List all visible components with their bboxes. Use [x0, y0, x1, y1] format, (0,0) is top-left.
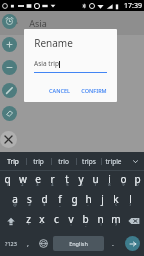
button[interactable]: Change language	[35, 231, 51, 256]
button[interactable]: .	[106, 231, 120, 256]
button[interactable]: 8	[102, 171, 116, 191]
staticText: 17:39	[124, 1, 142, 11]
button[interactable]: Asia trip	[34, 59, 107, 73]
staticText: English	[69, 240, 88, 247]
button[interactable]: 1	[0, 171, 15, 191]
button[interactable]: Back	[5, 15, 21, 31]
staticText: Rename	[34, 36, 73, 50]
staticText: q	[4, 172, 11, 186]
staticText: 6	[80, 182, 83, 187]
staticText: trio	[58, 157, 69, 166]
button[interactable]: #	[22, 191, 37, 211]
button[interactable]: 3	[30, 171, 45, 191]
button[interactable]: CONFIRM	[78, 85, 110, 96]
button[interactable]: trio	[51, 152, 76, 170]
staticText: :	[70, 222, 72, 227]
button[interactable]: CANCEL	[46, 85, 73, 96]
button[interactable]: Shift	[0, 211, 21, 231]
staticText: ,	[27, 239, 29, 249]
button[interactable]: 7	[88, 171, 102, 191]
staticText: 3	[36, 182, 39, 187]
button[interactable]: Draw	[2, 83, 17, 98]
staticText: z	[26, 212, 31, 226]
staticText: 2	[21, 182, 24, 187]
button[interactable]: Close	[0, 131, 17, 148]
staticText: j	[101, 192, 104, 206]
staticText: o	[120, 172, 127, 186]
button[interactable]: &	[67, 191, 81, 211]
button[interactable]: ?123	[0, 231, 21, 256]
button[interactable]: ?	[108, 211, 123, 231]
staticText: g	[71, 192, 78, 206]
button[interactable]: 0	[130, 171, 144, 191]
staticText: d	[41, 192, 48, 206]
staticText: CONFIRM	[81, 87, 107, 94]
button[interactable]: 6	[74, 171, 88, 191]
staticText: !	[100, 222, 102, 227]
staticText: '	[56, 222, 57, 227]
staticText: $	[43, 202, 46, 207]
staticText: "	[41, 222, 43, 227]
button[interactable]: Emoji	[21, 231, 35, 256]
button[interactable]: English	[53, 236, 104, 251]
staticText: &	[73, 202, 76, 207]
button[interactable]: 9	[116, 171, 130, 191]
button[interactable]: 4	[45, 171, 60, 191]
staticText: v	[68, 212, 74, 226]
button[interactable]: trips	[76, 152, 101, 170]
staticText: a	[12, 192, 18, 206]
staticText: trips	[82, 157, 96, 166]
staticText: 8	[108, 182, 111, 187]
staticText: ?123	[5, 240, 17, 247]
staticText: #	[28, 202, 31, 207]
button[interactable]: -	[81, 191, 95, 211]
staticText: s	[27, 192, 32, 206]
button[interactable]: ;	[78, 211, 93, 231]
button[interactable]: Enter	[125, 236, 140, 251]
button[interactable]: Erase	[2, 106, 17, 121]
staticText: e	[35, 172, 41, 186]
staticText: 7	[94, 182, 97, 187]
staticText: p	[134, 172, 141, 186]
staticText: i	[108, 172, 111, 186]
staticText: .	[112, 239, 114, 249]
staticText: )	[129, 202, 131, 207]
staticText: @	[13, 202, 17, 207]
button[interactable]: $	[37, 191, 52, 211]
staticText: h	[85, 192, 92, 206]
staticText: 4	[51, 182, 54, 187]
staticText: _	[59, 202, 61, 207]
button[interactable]: *	[21, 211, 35, 231]
button[interactable]: 2	[15, 171, 30, 191]
button[interactable]: Zoom in	[2, 37, 17, 52]
button[interactable]: More suggestions	[126, 152, 144, 170]
staticText: r	[50, 172, 55, 186]
staticText: k	[113, 192, 119, 206]
button[interactable]: @	[7, 191, 22, 211]
staticText: 0	[136, 182, 139, 187]
button[interactable]: Alarm	[2, 14, 17, 29]
button[interactable]: Zoom out	[2, 60, 17, 75]
staticText: m	[111, 212, 121, 226]
button[interactable]: (	[109, 191, 123, 211]
button[interactable]: :	[63, 211, 78, 231]
button[interactable]: +	[95, 191, 109, 211]
button[interactable]: Trip	[0, 152, 26, 170]
button[interactable]: !	[93, 211, 108, 231]
button[interactable]: trip	[26, 152, 51, 170]
staticText: -	[87, 202, 89, 207]
staticText: Asia	[29, 17, 47, 29]
button[interactable]: '	[49, 211, 63, 231]
staticText: u	[92, 172, 99, 186]
button[interactable]: )	[123, 191, 137, 211]
button[interactable]: 5	[60, 171, 74, 191]
staticText: (	[115, 202, 117, 207]
button[interactable]: "	[35, 211, 49, 231]
staticText: 5	[66, 182, 69, 187]
button[interactable]: triple	[101, 152, 126, 170]
staticText: ?	[115, 222, 117, 227]
button[interactable]: Backspace	[123, 211, 144, 231]
button[interactable]: _	[52, 191, 67, 211]
staticText: ;	[85, 222, 87, 227]
staticText: *	[27, 222, 30, 227]
